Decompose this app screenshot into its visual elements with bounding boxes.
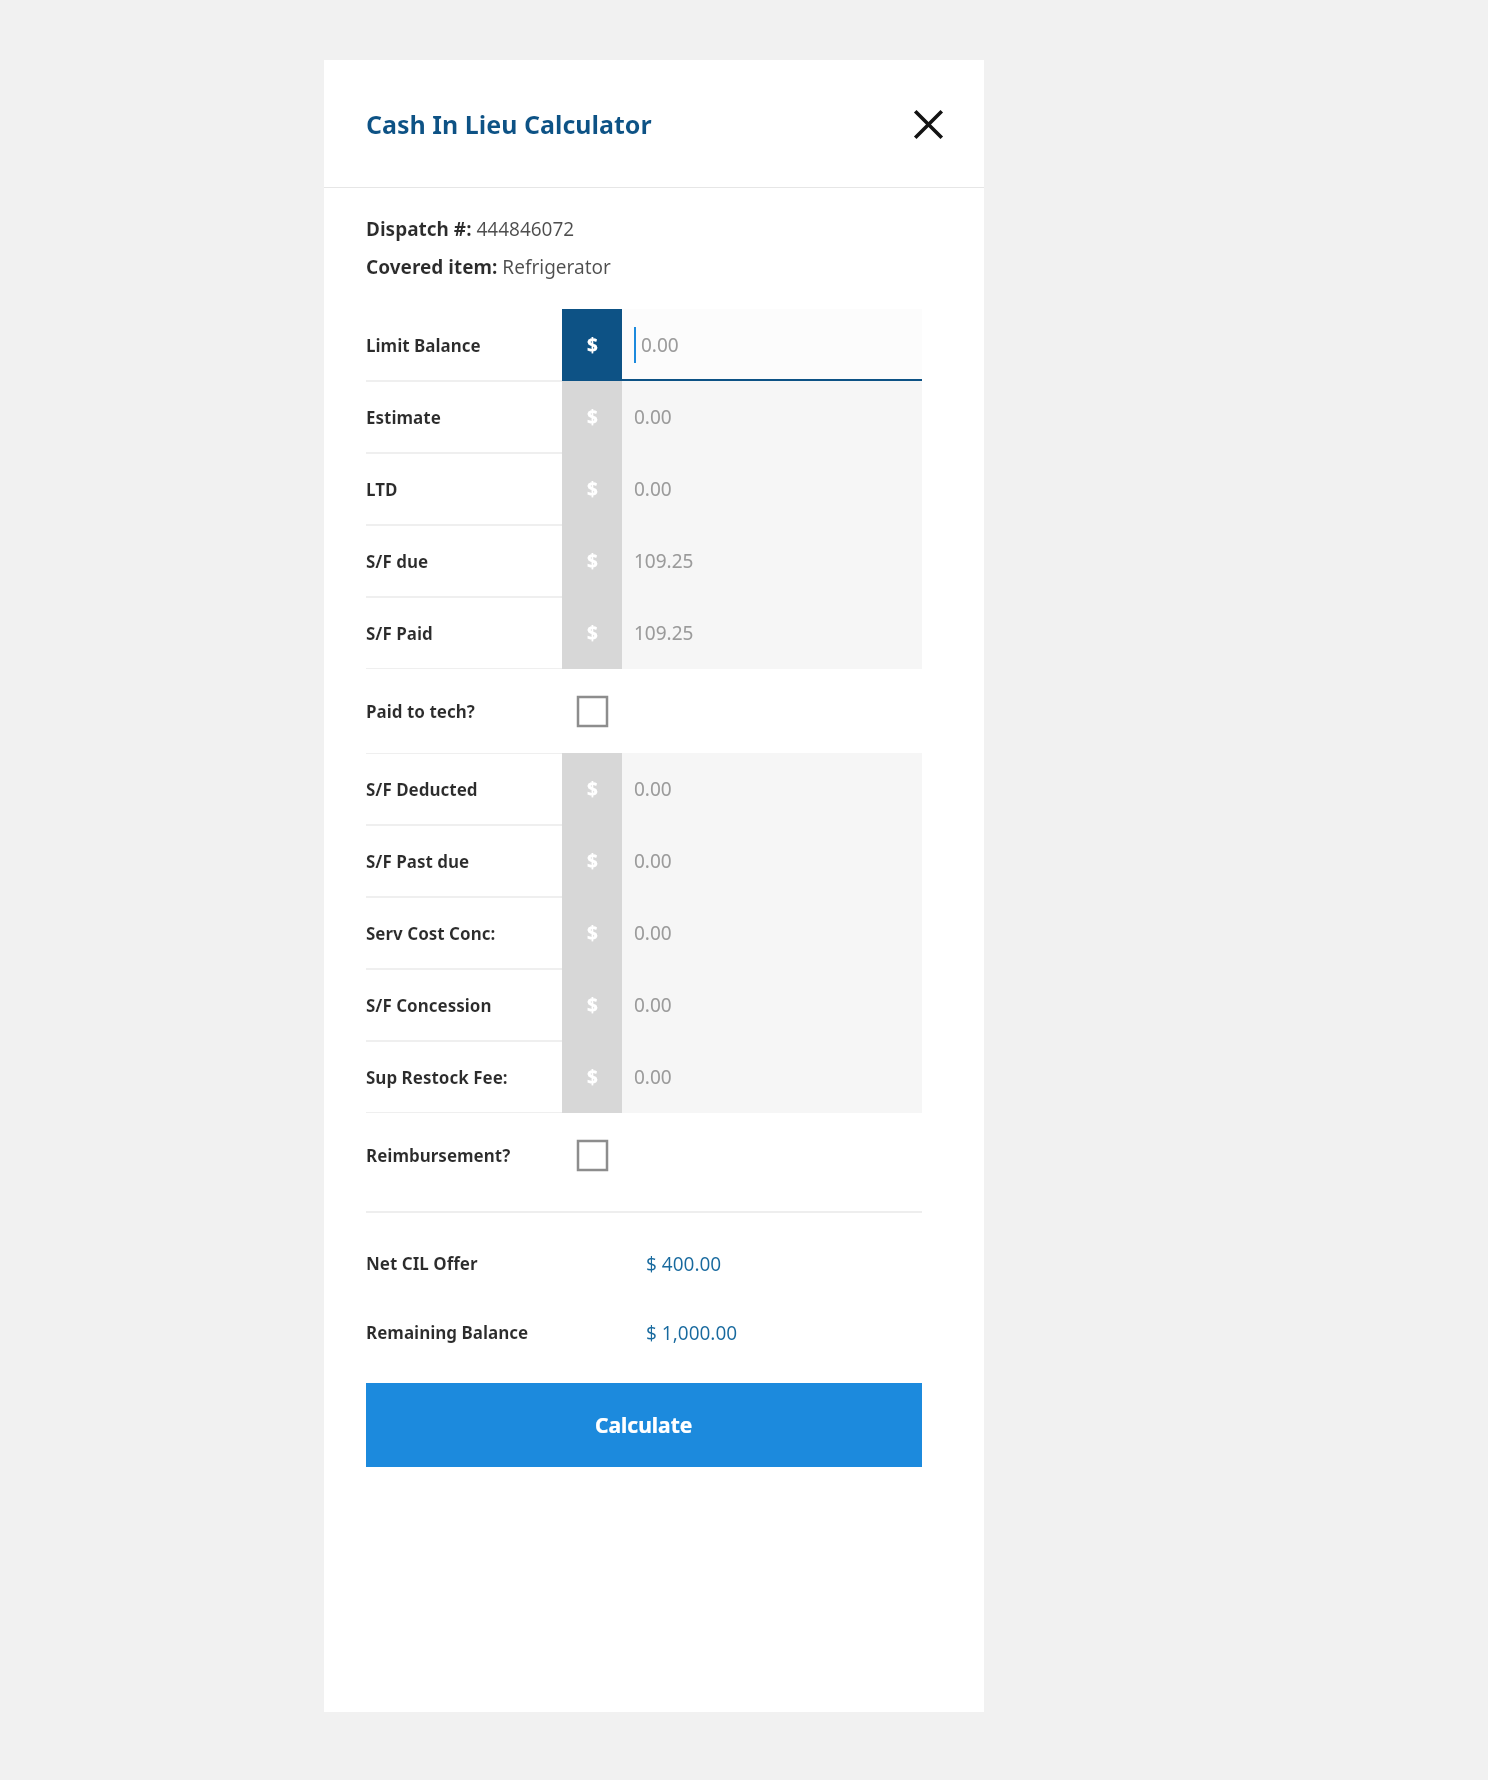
staticText: $ 400.00 — [646, 1251, 722, 1277]
staticText: 109.25 — [634, 620, 694, 646]
staticText: 0.00 — [634, 1064, 672, 1090]
staticText: $ — [587, 776, 598, 802]
staticText: $ — [587, 548, 598, 574]
staticText: $ — [587, 848, 598, 874]
button[interactable]: S/F Concession — [366, 969, 922, 1041]
staticText: Reimbursement? — [366, 1144, 511, 1167]
button[interactable]: Sup Restock Fee: — [366, 1041, 922, 1113]
staticText: $ — [587, 620, 598, 646]
button[interactable]: S/F Past due — [366, 825, 922, 897]
staticText: 0.00 — [634, 848, 672, 874]
staticText: Estimate — [366, 406, 441, 429]
staticText: 109.25 — [634, 548, 694, 574]
staticText: Limit Balance — [366, 334, 481, 357]
staticText: Sup Restock Fee: — [366, 1066, 508, 1089]
button[interactable]: S/F Paid — [366, 597, 922, 669]
button[interactable]: Net CIL Offer — [366, 1229, 922, 1298]
button[interactable]: Estimate — [366, 381, 922, 453]
staticText: S/F Concession — [366, 994, 492, 1017]
staticText: S/F Past due — [366, 850, 470, 873]
button[interactable]: S/F Deducted — [366, 753, 922, 825]
button[interactable]: Remaining Balance — [366, 1298, 922, 1367]
staticText: LTD — [366, 478, 398, 501]
button[interactable]: Serv Cost Conc: — [366, 897, 922, 969]
staticText: 0.00 — [634, 992, 672, 1018]
staticText: $ 1,000.00 — [646, 1320, 738, 1346]
staticText: 0.00 — [634, 920, 672, 946]
staticText: Remaining Balance — [366, 1321, 529, 1344]
staticText: $ — [587, 992, 598, 1018]
staticText: $ — [587, 332, 598, 358]
staticText: Serv Cost Conc: — [366, 922, 496, 945]
staticText: S/F Paid — [366, 622, 433, 645]
staticText: $ — [587, 920, 598, 946]
button[interactable]: Limit Balance — [366, 309, 922, 381]
staticText: Covered item: Refrigerator — [366, 254, 611, 280]
button[interactable]: Paid to tech? — [366, 669, 922, 753]
staticText: Calculate — [595, 1411, 693, 1440]
button[interactable]: S/F due — [366, 525, 922, 597]
staticText: S/F Deducted — [366, 778, 478, 801]
staticText: 0.00 — [634, 776, 672, 802]
button[interactable]: Calculate — [366, 1383, 922, 1467]
staticText: $ — [587, 404, 598, 430]
staticText: 0.00 — [641, 332, 679, 358]
button[interactable]: Reimbursement? — [366, 1113, 922, 1197]
staticText: $ — [587, 476, 598, 502]
staticText: S/F due — [366, 550, 429, 573]
button[interactable]: LTD — [366, 453, 922, 525]
staticText: Net CIL Offer — [366, 1252, 478, 1275]
staticText: 0.00 — [634, 404, 672, 430]
staticText: $ — [587, 1064, 598, 1090]
button[interactable]: Close — [906, 102, 950, 146]
staticText: Paid to tech? — [366, 700, 475, 723]
staticText: Dispatch #: 444846072 — [366, 216, 575, 242]
staticText: Cash In Lieu Calculator — [366, 107, 652, 141]
staticText: 0.00 — [634, 476, 672, 502]
